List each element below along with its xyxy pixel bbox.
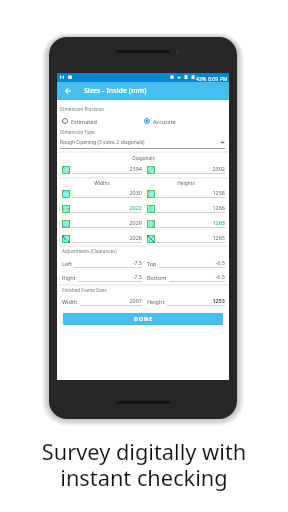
button[interactable]: Estimated [62, 117, 97, 125]
staticText: Accurate [153, 118, 176, 125]
staticText: -6.5 [159, 259, 225, 266]
staticText: Dimension Precision [60, 106, 105, 112]
button[interactable]: Accurate [144, 117, 176, 125]
staticText: 2028 [72, 234, 142, 241]
staticText: -6.5 [169, 273, 225, 280]
staticText: Adjustments (Clearances) [62, 248, 117, 254]
staticText: -7.5 [78, 273, 142, 280]
staticText: 1258 [157, 189, 225, 196]
staticText: 2029 [72, 219, 142, 226]
staticText: 1266 [157, 204, 225, 211]
button[interactable]: 2028 [62, 234, 142, 243]
staticText: Heights [147, 180, 225, 187]
button[interactable]: Top [147, 259, 225, 268]
staticText: 1253 [167, 297, 225, 304]
button[interactable]: 2029 [62, 219, 142, 228]
staticText: Left [62, 260, 72, 267]
staticText: 2007 [80, 297, 142, 304]
button[interactable]: 1263 [147, 219, 225, 228]
button[interactable]: Bottom [147, 273, 225, 282]
staticText: Estimated [71, 118, 97, 125]
staticText: 42% [196, 75, 207, 82]
button[interactable]: Right [62, 273, 142, 282]
button[interactable]: 2030 [62, 189, 142, 198]
staticText: 6:09 PM [208, 75, 228, 82]
button[interactable]: Back [61, 84, 75, 98]
button[interactable]: 2392 [147, 165, 225, 174]
staticText: Widths [62, 180, 142, 187]
button[interactable]: Left [62, 259, 142, 268]
button[interactable]: DONE [63, 313, 223, 325]
staticText: Finished Frame Sizes [62, 287, 107, 293]
staticText: 2030 [72, 189, 142, 196]
staticText: -7.5 [74, 259, 142, 266]
button[interactable]: Height [147, 297, 225, 306]
staticText: DONE [134, 315, 153, 323]
button[interactable]: 1266 [147, 204, 225, 213]
staticText: Top [147, 260, 157, 267]
staticText: Right [62, 274, 76, 281]
staticText: 2022 [72, 204, 142, 211]
staticText: Survey digitally with instant checking [0, 437, 288, 492]
button[interactable]: 2022 [62, 204, 142, 213]
staticText: 1263 [157, 219, 225, 226]
staticText: Diagonals [62, 155, 225, 162]
staticText: 2392 [157, 165, 225, 172]
button[interactable]: 2394 [62, 165, 142, 174]
button[interactable]: 1258 [147, 189, 225, 198]
staticText: Rough Opening (3 sizes, 2 diagonals) [60, 139, 145, 146]
staticText: 2394 [72, 165, 142, 172]
button[interactable]: Rough Opening (3 sizes, 2 diagonals) [60, 138, 225, 147]
staticText: Sizes - Inside (mm) [84, 86, 147, 96]
staticText: Width [62, 298, 78, 305]
staticText: 1265 [157, 234, 225, 241]
staticText: Height [147, 298, 165, 305]
staticText: Dimension Type [60, 129, 95, 135]
button[interactable]: 1265 [147, 234, 225, 243]
staticText: Bottom [147, 274, 167, 281]
button[interactable]: Width [62, 297, 142, 306]
button[interactable]: Back [57, 82, 229, 100]
